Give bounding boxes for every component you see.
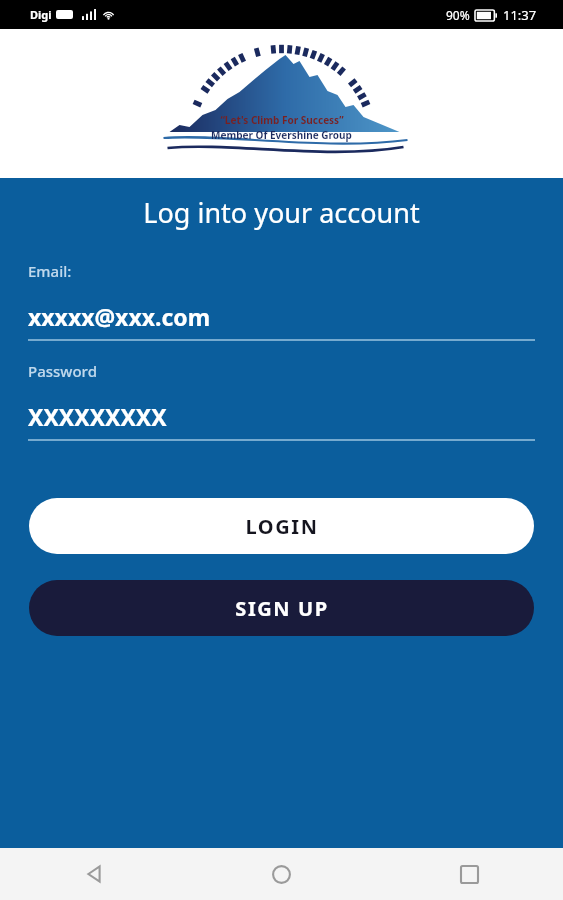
staticText: Email: — [28, 261, 72, 281]
button[interactable]: LOGIN — [29, 498, 534, 554]
button[interactable]: SIGN UP — [29, 580, 534, 636]
staticText: xxxxx@xxx.com — [28, 301, 211, 332]
staticText: 90% — [446, 7, 470, 23]
button[interactable]: Back — [0, 848, 187, 900]
staticText: Member Of Evershine Group — [211, 128, 352, 142]
staticText: Log into your account — [0, 194, 563, 231]
button[interactable]: Email: — [0, 261, 563, 341]
staticText: 11:37 — [503, 6, 537, 24]
staticText: LOGIN — [245, 513, 319, 540]
button[interactable]: Home — [187, 848, 375, 900]
staticText: Password — [28, 361, 97, 381]
staticText: SIGN UP — [235, 595, 329, 622]
staticText: XXXXXXXXX — [28, 401, 167, 432]
button[interactable]: Recent apps — [375, 848, 563, 900]
staticText: “Let's Climb For Success” — [220, 113, 344, 127]
button[interactable]: Password — [0, 361, 563, 441]
staticText: Digi — [30, 7, 52, 22]
